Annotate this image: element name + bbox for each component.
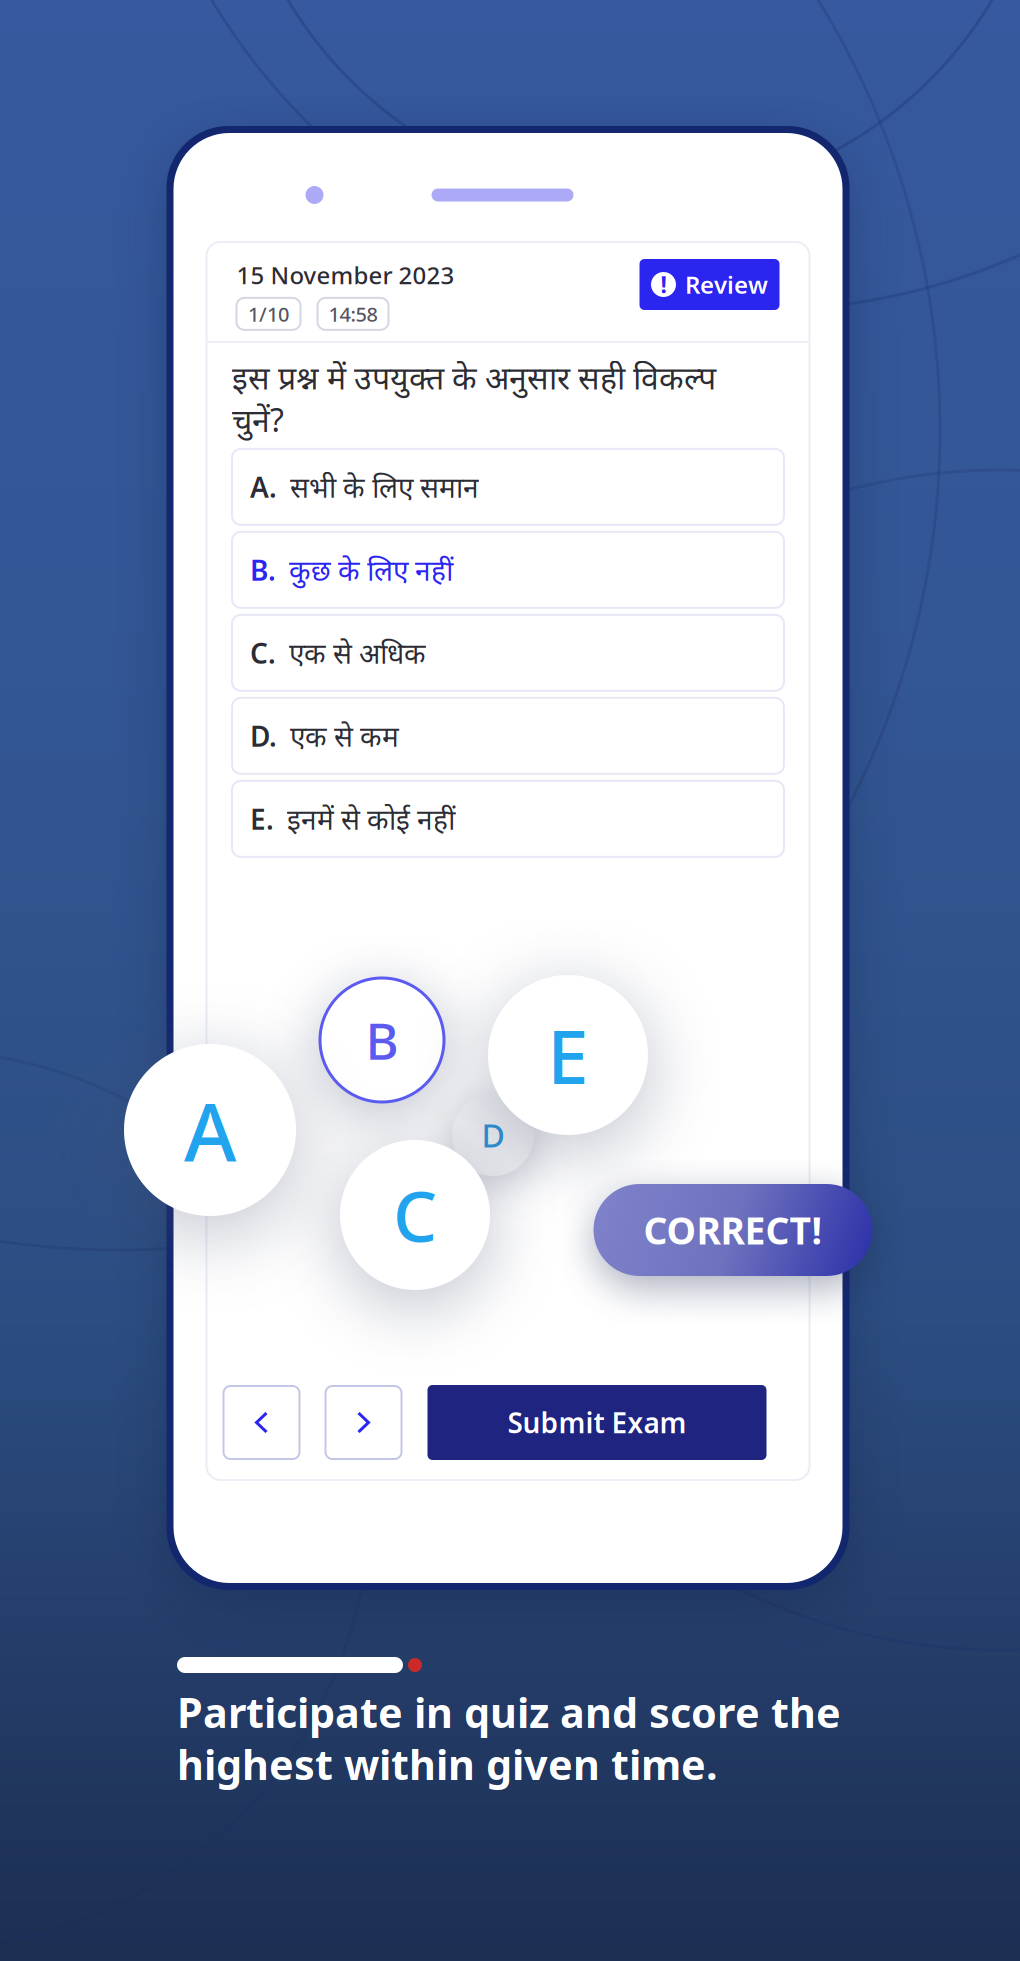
staticText: कुछ के लिए नहीं: [289, 551, 453, 588]
staticText: A.: [250, 468, 277, 505]
staticText: इस प्रश्न में उपयुक्त के अनुसार सही विकल…: [232, 356, 716, 441]
staticText: 1/10: [248, 301, 289, 327]
staticText: C.: [250, 634, 276, 671]
staticText: Review: [685, 269, 768, 300]
staticText: Submit Exam: [507, 1404, 686, 1441]
button[interactable]: !: [639, 259, 779, 310]
staticText: Participate in quiz and score the: [177, 1685, 841, 1739]
button[interactable]: Next question: [325, 1386, 401, 1459]
staticText: C: [393, 1169, 437, 1261]
staticText: CORRECT!: [643, 1205, 822, 1255]
staticText: highest within given time.: [177, 1737, 718, 1791]
staticText: D: [481, 1114, 504, 1156]
staticText: E: [547, 1005, 589, 1105]
staticText: सभी के लिए समान: [290, 468, 479, 505]
button[interactable]: D.: [232, 698, 784, 774]
button[interactable]: A.: [232, 449, 784, 525]
button[interactable]: B.: [232, 532, 784, 608]
staticText: 14:58: [328, 301, 377, 327]
staticText: E.: [250, 800, 274, 837]
button[interactable]: E.: [232, 781, 784, 857]
staticText: एक से कम: [290, 717, 399, 754]
staticText: D.: [250, 717, 277, 754]
button[interactable]: C.: [232, 615, 784, 691]
staticText: एक से अधिक: [289, 634, 426, 671]
staticText: B.: [250, 551, 276, 588]
button[interactable]: Previous question: [223, 1386, 299, 1459]
staticText: 15 November 2023: [236, 259, 454, 291]
staticText: A: [184, 1077, 236, 1183]
staticText: इनमें से कोई नहीं: [287, 800, 455, 837]
button[interactable]: Submit Exam: [427, 1385, 766, 1460]
staticText: !: [660, 269, 666, 299]
staticText: B: [365, 1006, 398, 1074]
